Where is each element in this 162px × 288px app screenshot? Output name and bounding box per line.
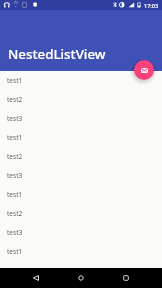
staticText: test2 [7,152,23,161]
staticText: test3 [7,171,23,180]
staticText: test2 [7,95,23,104]
button[interactable]: Compose message [134,60,154,80]
button[interactable]: Back [24,270,48,285]
button[interactable]: test2 [0,90,162,109]
button[interactable]: test1 [0,71,162,90]
staticText: test2 [7,209,23,218]
button[interactable]: test3 [0,223,162,242]
staticText: test1 [7,76,23,85]
button[interactable]: test1 [0,185,162,204]
staticText: test1 [7,247,23,256]
staticText: test3 [7,228,23,237]
button[interactable]: test3 [0,166,162,185]
button[interactable]: Home [69,270,93,285]
button[interactable]: test3 [0,109,162,128]
button[interactable]: test1 [0,128,162,147]
button[interactable]: Recent apps [114,270,138,285]
staticText: NestedListView [8,45,106,63]
staticText: test1 [7,133,23,142]
button[interactable]: test2 [0,147,162,166]
staticText: test3 [7,114,23,123]
button[interactable]: test1 [0,242,162,261]
button[interactable]: test2 [0,204,162,223]
staticText: test1 [7,190,23,199]
staticText: 17:03 [144,2,159,9]
